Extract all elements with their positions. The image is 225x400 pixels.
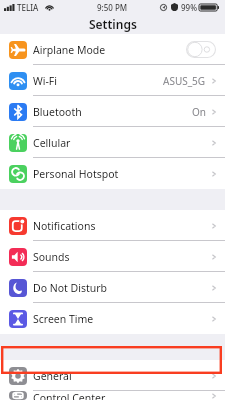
staticText: Do Not Disturb	[33, 281, 108, 295]
button[interactable]: Notifications	[0, 210, 225, 241]
staticText: General	[33, 369, 72, 383]
button[interactable]: Cellular	[0, 127, 225, 158]
button[interactable]: Personal Hotspot	[0, 158, 225, 189]
staticText: Personal Hotspot	[33, 167, 119, 181]
staticText: TELIA	[17, 2, 39, 13]
staticText: 9:50 PM	[97, 2, 128, 13]
staticText: Control Center	[33, 391, 106, 400]
staticText: ASUS_5G	[163, 74, 206, 88]
button[interactable]: Airplane Mode	[0, 34, 225, 65]
staticText: Bluetooth	[33, 105, 82, 119]
button[interactable]: Wi-Fi	[0, 65, 225, 96]
staticText: 99%	[181, 2, 197, 13]
staticText: Wi-Fi	[33, 74, 58, 88]
staticText: Screen Time	[33, 312, 94, 326]
staticText: Cellular	[33, 136, 71, 150]
staticText: Notifications	[33, 219, 96, 233]
button[interactable]: Control Center	[0, 391, 225, 400]
button[interactable]: General	[0, 360, 225, 391]
staticText: Airplane Mode	[33, 43, 106, 57]
button[interactable]: Sounds	[0, 241, 225, 272]
button[interactable]: Do Not Disturb	[0, 272, 225, 303]
staticText: Settings	[89, 16, 137, 32]
staticText: Sounds	[33, 250, 70, 264]
button[interactable]: Bluetooth	[0, 96, 225, 127]
staticText: On	[192, 105, 206, 119]
button[interactable]: Screen Time	[0, 303, 225, 334]
button[interactable]: Airplane Mode toggle, off	[186, 41, 216, 58]
